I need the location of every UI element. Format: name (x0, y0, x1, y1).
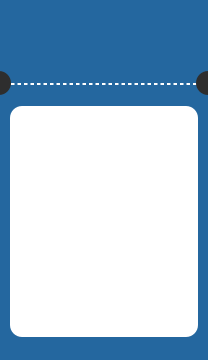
button[interactable]: Ticket (10, 106, 198, 337)
